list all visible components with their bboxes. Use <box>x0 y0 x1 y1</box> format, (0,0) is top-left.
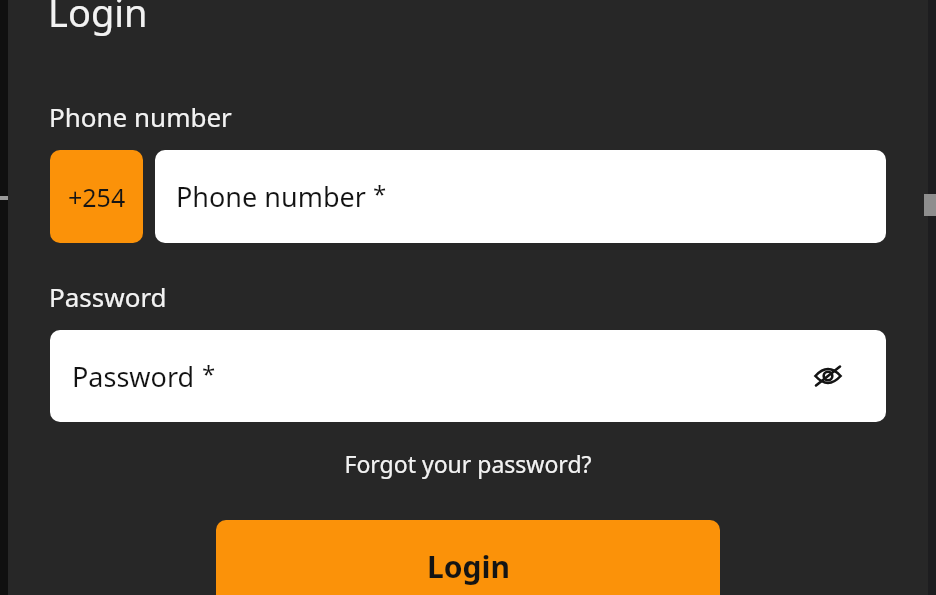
staticText: Password <box>49 279 167 314</box>
staticText: * <box>202 357 216 390</box>
staticText: Login <box>427 546 510 587</box>
button[interactable]: Show password <box>806 354 850 398</box>
button[interactable]: Password <box>50 330 886 422</box>
button[interactable]: Phone number <box>155 150 886 243</box>
staticText: * <box>373 177 387 210</box>
staticText: Login <box>48 0 148 38</box>
staticText: +254 <box>68 180 126 214</box>
button[interactable]: Forgot your password? <box>344 448 592 479</box>
staticText: Phone number <box>176 178 366 215</box>
button[interactable]: +254 <box>50 150 143 243</box>
staticText: Forgot your password? <box>344 448 592 479</box>
staticText: Phone number <box>49 99 232 134</box>
staticText: Password <box>72 358 195 395</box>
button[interactable]: Login <box>216 520 720 595</box>
